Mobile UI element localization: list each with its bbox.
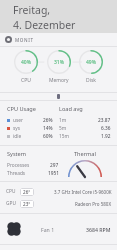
staticText: 14% <box>43 125 53 132</box>
staticText: Memory <box>49 77 69 84</box>
staticText: CPU Usage <box>7 105 36 113</box>
staticText: 15m <box>59 133 69 140</box>
staticText: 49% <box>86 59 96 66</box>
staticText: 60% <box>43 133 53 140</box>
staticText: GPU <box>6 200 16 207</box>
staticText: 5m <box>59 125 67 132</box>
staticText: Fan 1 <box>41 226 55 233</box>
button[interactable]: 31% <box>47 50 71 84</box>
staticText: 1.92 <box>101 133 111 140</box>
staticText: 1m <box>59 117 67 124</box>
staticText: 1951 <box>48 170 59 177</box>
button[interactable]: MONIT <box>0 33 117 46</box>
staticText: 4. Dezember <box>13 18 76 32</box>
staticText: 6.36 <box>101 125 111 132</box>
staticText: MONIT <box>15 37 34 43</box>
staticText: sys <box>13 125 21 132</box>
staticText: 40% <box>21 59 31 66</box>
button[interactable]: Fan <box>7 222 21 236</box>
staticText: Disk <box>86 77 97 84</box>
staticText: Freitag, <box>13 3 51 17</box>
staticText: CPU <box>6 188 16 195</box>
staticText: 23.87 <box>98 117 111 124</box>
button[interactable]: Fan <box>0 214 117 244</box>
staticText: Thermal <box>74 150 96 158</box>
staticText: 26° <box>23 189 31 195</box>
button[interactable]: 40% <box>14 50 38 84</box>
staticText: 297 <box>50 162 59 169</box>
staticText: Radeon Pro 580X <box>75 201 112 207</box>
staticText: Threads <box>7 170 26 177</box>
staticText: 3.7 GHz Intel Core i5-9600K <box>54 189 112 195</box>
staticText: 26% <box>43 117 53 124</box>
staticText: CPU <box>21 77 31 84</box>
staticText: idle <box>13 133 22 140</box>
staticText: user <box>13 117 23 124</box>
button[interactable]: 49% <box>79 50 103 84</box>
staticText: 31% <box>54 59 64 66</box>
staticText: Processes <box>7 162 30 169</box>
staticText: Load avg <box>59 105 83 113</box>
staticText: 23° <box>23 201 31 207</box>
staticText: System <box>7 150 27 158</box>
staticText: 3684 RPM <box>86 226 111 233</box>
